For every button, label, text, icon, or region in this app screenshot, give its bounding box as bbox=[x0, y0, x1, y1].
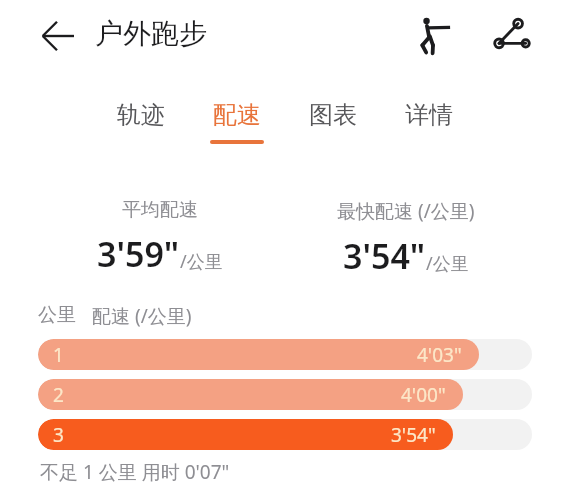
staticText: 详情 bbox=[405, 100, 453, 130]
staticText: 配速 bbox=[213, 100, 261, 130]
button[interactable]: Share bbox=[485, 8, 539, 62]
staticText: 4'00" bbox=[401, 382, 446, 408]
staticText: /公里 bbox=[426, 251, 469, 276]
button[interactable]: 1 bbox=[38, 339, 532, 370]
staticText: 不足 1 公里 用时 0'07" bbox=[40, 459, 230, 485]
staticText: 配速 (/公里) bbox=[92, 303, 192, 329]
staticText: /公里 bbox=[180, 249, 223, 274]
staticText: 4'03" bbox=[417, 342, 462, 368]
button[interactable]: 轨迹 bbox=[106, 100, 176, 144]
staticText: 公里 bbox=[38, 303, 76, 327]
staticText: 最快配速 (/公里) bbox=[337, 198, 475, 224]
staticText: 户外跑步 bbox=[95, 16, 207, 51]
staticText: 3'59" bbox=[97, 231, 180, 277]
button[interactable]: Back bbox=[30, 8, 86, 64]
button[interactable]: 详情 bbox=[394, 100, 464, 144]
staticText: 1 bbox=[53, 342, 64, 368]
button[interactable]: 2 bbox=[38, 379, 532, 410]
button[interactable]: Activity type bbox=[406, 8, 460, 62]
staticText: 3 bbox=[53, 422, 64, 448]
staticText: 2 bbox=[53, 382, 64, 408]
staticText: 图表 bbox=[309, 100, 357, 130]
staticText: 平均配速 bbox=[122, 198, 198, 222]
staticText: 3'54" bbox=[343, 233, 426, 279]
button[interactable]: 图表 bbox=[298, 100, 368, 144]
button[interactable]: 3 bbox=[38, 419, 532, 450]
staticText: 3'54" bbox=[391, 422, 436, 448]
staticText: 轨迹 bbox=[117, 100, 165, 130]
button[interactable]: 配速 bbox=[202, 100, 272, 144]
